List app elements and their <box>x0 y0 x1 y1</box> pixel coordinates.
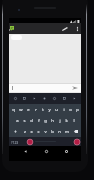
staticText: f <box>38 118 40 124</box>
button[interactable]: u <box>53 104 60 115</box>
staticText: h <box>51 118 54 124</box>
staticText: p <box>76 107 79 113</box>
button[interactable]: Keyboard tool <box>39 93 49 104</box>
staticText: e <box>27 107 30 113</box>
button[interactable]: q <box>9 104 17 115</box>
staticText: c <box>37 129 40 135</box>
button[interactable]: i <box>60 104 67 115</box>
staticText: m <box>65 129 69 135</box>
button[interactable]: j <box>56 115 63 126</box>
button[interactable]: o <box>67 104 74 115</box>
button[interactable]: Compose <box>59 23 70 34</box>
button[interactable]: x <box>28 126 35 137</box>
staticText: u <box>55 107 58 113</box>
button[interactable]: l <box>70 115 77 126</box>
staticText: v <box>44 129 47 135</box>
button[interactable]: Keyboard tool <box>49 93 59 104</box>
staticText: z <box>24 129 26 135</box>
button[interactable]: Shift <box>9 126 21 137</box>
button[interactable]: c <box>35 126 42 137</box>
button[interactable]: Send <box>69 84 80 92</box>
button[interactable]: Recents <box>62 147 71 156</box>
staticText: q <box>12 107 15 113</box>
button[interactable]: s <box>21 115 28 126</box>
staticText: d <box>30 118 33 124</box>
button[interactable]: z <box>21 126 28 137</box>
staticText: g <box>44 118 47 124</box>
button[interactable]: v <box>42 126 49 137</box>
button[interactable]: Keyboard tool <box>20 93 29 104</box>
button[interactable]: Backspace <box>70 126 81 137</box>
staticText: i <box>63 107 65 113</box>
button[interactable]: d <box>28 115 35 126</box>
button[interactable]: y <box>46 104 53 115</box>
button[interactable]: Send <box>74 139 80 145</box>
button[interactable]: t <box>39 104 46 115</box>
staticText: k <box>65 118 68 124</box>
button[interactable]: f <box>35 115 42 126</box>
staticText: n <box>58 129 61 135</box>
button[interactable]: k <box>63 115 70 126</box>
button[interactable]: Keyboard tool <box>29 93 39 104</box>
button[interactable]: n <box>56 126 63 137</box>
staticText: y <box>48 107 51 113</box>
staticText: t <box>42 107 44 113</box>
staticText: w <box>19 107 23 113</box>
staticText: a <box>16 118 19 124</box>
staticText: b <box>51 129 54 135</box>
staticText: o <box>69 107 72 113</box>
button[interactable]: e <box>25 104 32 115</box>
staticText: r <box>35 107 37 113</box>
button[interactable]: a <box>14 115 21 126</box>
staticText: s <box>23 118 26 124</box>
button[interactable]: Keyboard tool <box>59 93 69 104</box>
button[interactable]: More options <box>73 23 82 34</box>
button[interactable]: h <box>49 115 56 126</box>
button[interactable]: Back <box>21 147 30 156</box>
button[interactable]: w <box>17 104 25 115</box>
button[interactable]: Voice input <box>27 139 33 145</box>
button[interactable]: m <box>63 126 70 137</box>
staticText: j <box>59 118 61 124</box>
button[interactable]: g <box>42 115 49 126</box>
button[interactable]: b <box>49 126 56 137</box>
staticText: x <box>30 129 33 135</box>
button[interactable] <box>11 35 22 40</box>
button[interactable]: Home <box>42 147 51 156</box>
button[interactable]: r <box>32 104 39 115</box>
staticText: l <box>73 118 75 124</box>
button[interactable]: p <box>74 104 81 115</box>
button[interactable]: Messages <box>9 23 18 34</box>
button[interactable]: Keyboard tool <box>11 93 20 104</box>
button[interactable]: Keyboard tool <box>69 93 79 104</box>
staticText: ?123 <box>11 140 19 145</box>
